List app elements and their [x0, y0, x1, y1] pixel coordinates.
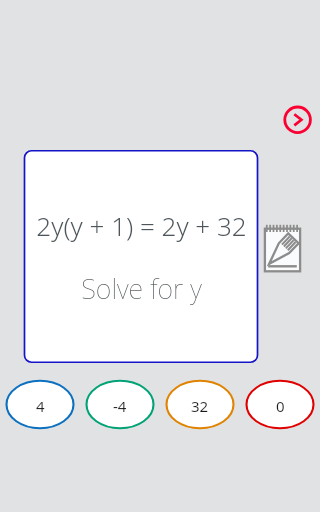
- staticText: 2y(y + 1) = 2y + 32: [36, 208, 247, 243]
- button[interactable]: 32: [160, 380, 240, 429]
- staticText: 0: [276, 396, 285, 416]
- button[interactable]: Scratch pad: [262, 222, 304, 276]
- button[interactable]: -4: [80, 380, 160, 429]
- staticText: 32: [191, 396, 209, 416]
- button[interactable]: 2y(y + 1) = 2y + 32: [23, 149, 259, 364]
- button[interactable]: 4: [0, 380, 80, 429]
- staticText: Solve for y: [81, 270, 202, 307]
- staticText: 4: [36, 396, 45, 416]
- button[interactable]: Next question: [282, 104, 314, 136]
- staticText: -4: [113, 396, 127, 416]
- button[interactable]: 0: [240, 380, 320, 429]
